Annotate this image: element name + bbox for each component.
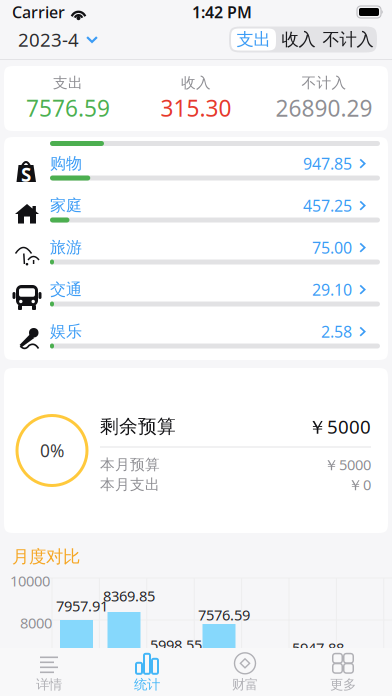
staticText: 75.00 bbox=[312, 237, 352, 258]
staticText: 剩余预算 bbox=[100, 415, 176, 438]
staticText: S bbox=[21, 162, 31, 187]
staticText: ￥5000 bbox=[308, 414, 371, 439]
staticText: 支出 bbox=[236, 29, 270, 50]
staticText: 2.58 bbox=[321, 321, 352, 342]
staticText: 10000 bbox=[10, 571, 50, 590]
staticText: 7576.59 bbox=[198, 605, 250, 624]
staticText: 统计 bbox=[134, 676, 160, 693]
staticText: 旅游 bbox=[50, 238, 82, 257]
staticText: 不计入 bbox=[322, 29, 373, 50]
button[interactable]: 收入 bbox=[276, 28, 321, 50]
staticText: Carrier bbox=[12, 1, 65, 23]
staticText: 8000 bbox=[20, 613, 52, 632]
staticText: ￥5000 bbox=[324, 455, 371, 474]
button[interactable]: 详情 bbox=[0, 648, 98, 696]
staticText: 7576.59 bbox=[26, 93, 110, 123]
staticText: 详情 bbox=[36, 676, 62, 693]
staticText: 购物 bbox=[50, 154, 82, 173]
staticText: 315.30 bbox=[160, 93, 231, 123]
button[interactable]: 更多 bbox=[294, 648, 392, 696]
staticText: 月度对比 bbox=[12, 546, 80, 567]
staticText: 1:42 PM bbox=[192, 1, 252, 23]
staticText: 2023-4 bbox=[18, 27, 79, 52]
staticText: 26890.29 bbox=[275, 93, 372, 123]
staticText: 不计入 bbox=[301, 74, 346, 92]
button[interactable]: S bbox=[4, 149, 388, 191]
button[interactable]: 2023-4 bbox=[0, 18, 108, 61]
staticText: 财富 bbox=[232, 676, 258, 693]
button[interactable]: 家庭 bbox=[4, 191, 388, 233]
staticText: 更多 bbox=[330, 676, 356, 693]
staticText: 家庭 bbox=[50, 196, 82, 215]
staticText: 29.10 bbox=[312, 279, 352, 300]
staticText: 7957.91 bbox=[56, 596, 108, 615]
staticText: 0% bbox=[40, 439, 64, 462]
staticText: 交通 bbox=[50, 280, 82, 299]
button[interactable]: 旅游 bbox=[4, 233, 388, 275]
staticText: 收入 bbox=[181, 74, 211, 92]
button[interactable]: 支出 bbox=[231, 28, 276, 50]
button[interactable]: 财富 bbox=[196, 648, 294, 696]
staticText: 947.85 bbox=[303, 153, 352, 174]
staticText: 5998.55 bbox=[150, 635, 202, 654]
staticText: 娱乐 bbox=[50, 322, 82, 341]
button[interactable]: 统计 bbox=[98, 648, 196, 696]
button[interactable]: 交通 bbox=[4, 275, 388, 317]
staticText: 本月预算 bbox=[100, 455, 160, 473]
staticText: 457.25 bbox=[303, 195, 352, 216]
button[interactable]: 不计入 bbox=[321, 28, 375, 50]
staticText: ￥0 bbox=[348, 475, 371, 494]
staticText: 5947.88 bbox=[292, 638, 344, 657]
staticText: 支出 bbox=[53, 74, 83, 92]
button[interactable]: 娱乐 bbox=[4, 317, 388, 359]
staticText: 本月支出 bbox=[100, 475, 160, 493]
staticText: 8369.85 bbox=[103, 586, 155, 605]
staticText: 收入 bbox=[281, 29, 315, 50]
